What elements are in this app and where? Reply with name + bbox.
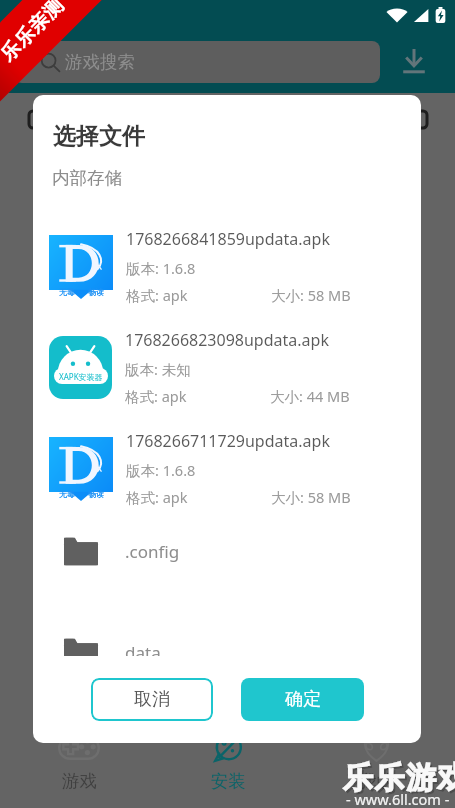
staticText: 畅读 [88, 489, 104, 499]
staticText: 安装 [211, 770, 246, 792]
staticText: 乐乐游戏 [344, 761, 455, 799]
staticText: 版本: 1.6.8 [126, 258, 196, 278]
button[interactable]: 游戏 [9, 730, 149, 808]
button[interactable]: 无毒 [33, 418, 421, 519]
button[interactable]: 无毒 [33, 216, 421, 317]
staticText: 确定 [285, 688, 321, 711]
staticText: 大小: 58 MB [271, 487, 351, 507]
button[interactable]: data [33, 616, 421, 656]
button[interactable]: 安装 [158, 730, 298, 808]
staticText: 1768266711729updata.apk [126, 430, 330, 452]
button[interactable]: 游戏搜索 [14, 41, 380, 83]
staticText: 版本: 未知 [125, 359, 191, 379]
staticText: 格式: apk [126, 285, 188, 305]
staticText: 内部存储 [52, 167, 122, 189]
button[interactable]: .config [33, 515, 421, 616]
staticText: 无毒 [59, 287, 75, 297]
button[interactable]: Downloads [392, 39, 436, 83]
button[interactable]: 确定 [241, 678, 364, 721]
staticText: 取消 [134, 688, 170, 711]
staticText: .config [125, 540, 180, 563]
button[interactable]: XAPK安装器 [33, 317, 421, 418]
staticText: data [125, 641, 161, 656]
button[interactable]: 我的 [306, 730, 446, 808]
staticText: 游戏搜索 [65, 51, 135, 73]
staticText: 畅读 [88, 287, 104, 297]
staticText: 选择文件 [53, 122, 145, 151]
staticText: 乐乐游戏 [342, 759, 455, 797]
button[interactable]: 取消 [91, 678, 213, 721]
staticText: - www.6ll.com - [346, 789, 450, 808]
staticText: 我的 [359, 770, 394, 792]
staticText: 大小: 44 MB [270, 386, 350, 406]
staticText: 大小: 58 MB [271, 285, 351, 305]
staticText: 游戏 [62, 770, 97, 792]
staticText: 格式: apk [125, 386, 187, 406]
staticText: 版本: 1.6.8 [126, 460, 196, 480]
staticText: XAPK安装器 [59, 371, 103, 382]
staticText: 格式: apk [126, 487, 188, 507]
staticText: 无毒 [59, 489, 75, 499]
staticText: 1768266841859updata.apk [126, 228, 330, 250]
staticText: 1768266823098updata.apk [125, 329, 329, 351]
staticText: 乐乐亲测 [0, 0, 69, 67]
